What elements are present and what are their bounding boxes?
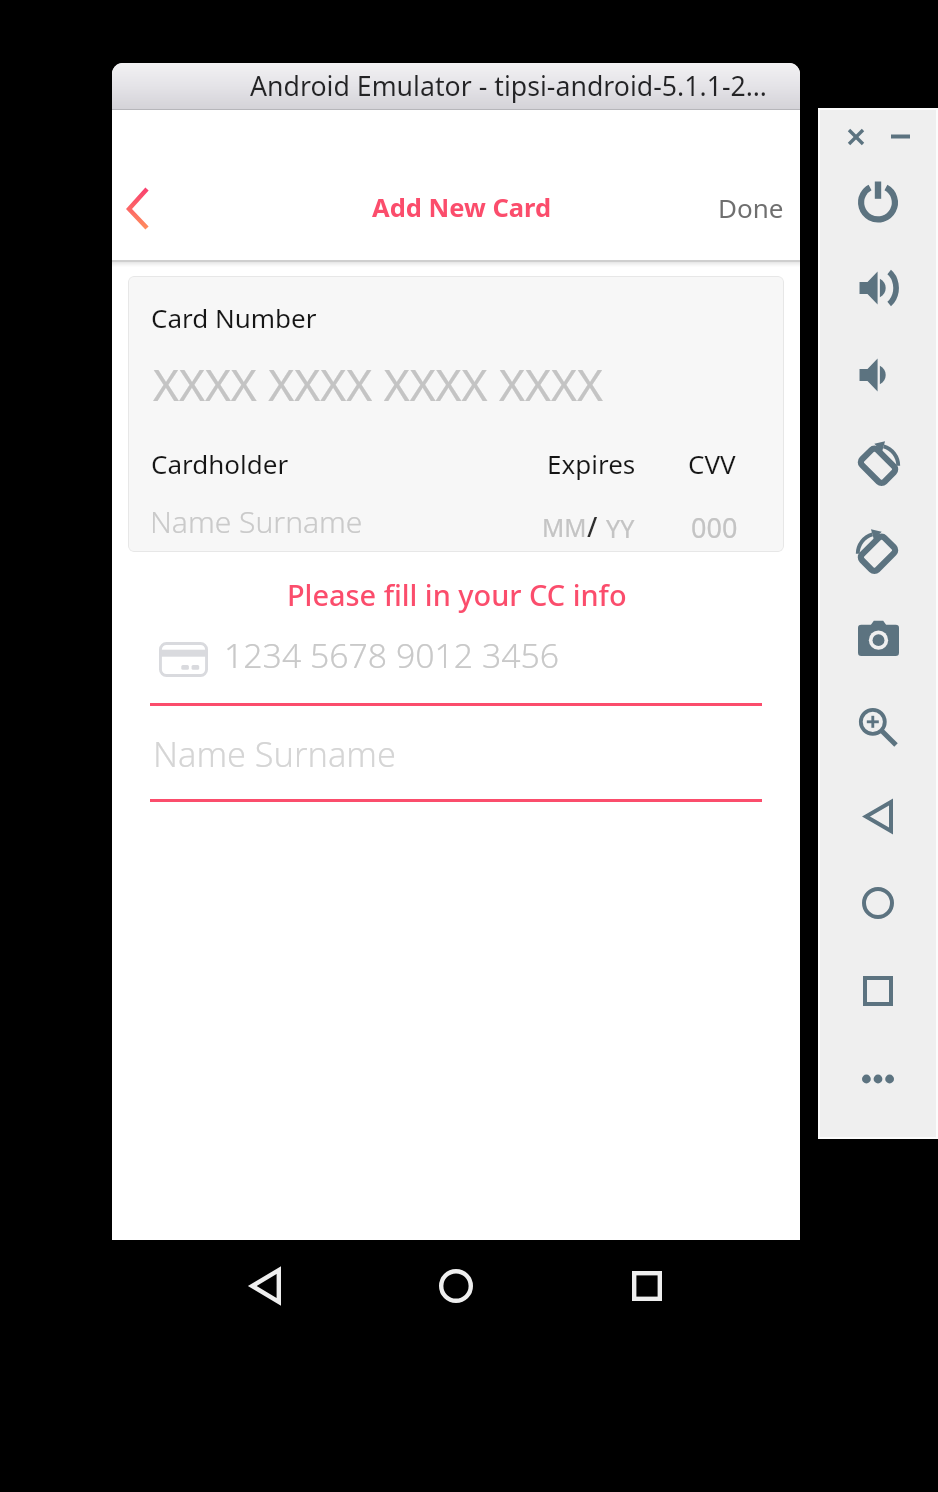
button[interactable]: Home [848, 873, 908, 933]
staticText: 000 [691, 509, 738, 546]
button[interactable]: Power [848, 170, 908, 230]
button[interactable]: Back [848, 786, 908, 846]
staticText: XXXX XXXX XXXX XXXX [153, 354, 603, 414]
staticText: Name Surname [153, 730, 396, 777]
button[interactable]: Rotate left [848, 433, 908, 493]
button[interactable]: Recent apps [617, 1256, 677, 1316]
button[interactable]: More [848, 1049, 908, 1109]
staticText: Add New Card [372, 190, 552, 225]
staticText: 1234 5678 9012 3456 [224, 632, 560, 678]
staticText: MM [542, 511, 587, 544]
button[interactable]: Back [235, 1256, 295, 1316]
button[interactable]: Zoom [848, 697, 908, 757]
staticText: Card Number [151, 300, 317, 335]
button[interactable]: Done [708, 181, 800, 225]
staticText: CVV [688, 446, 736, 481]
staticText: Expires [547, 446, 636, 481]
button[interactable]: Minimize [880, 116, 921, 157]
staticText: Name Surname [150, 501, 363, 542]
button[interactable]: Overview [848, 961, 908, 1021]
staticText: Cardholder [151, 446, 289, 481]
button[interactable]: Home [426, 1256, 486, 1316]
button[interactable]: Volume up [848, 258, 908, 318]
button[interactable]: Add New Card [362, 181, 552, 225]
staticText: / [587, 508, 598, 545]
staticText: Please fill in your CC info [287, 575, 627, 614]
button[interactable]: Close [835, 116, 876, 157]
staticText: Done [718, 190, 784, 225]
staticText: YY [606, 511, 635, 545]
button[interactable]: Rotate right [848, 521, 908, 581]
button[interactable]: Volume down [848, 345, 908, 405]
button[interactable]: Back [112, 153, 188, 229]
button[interactable]: Take screenshot [848, 608, 908, 668]
staticText: Android Emulator - tipsi-android-5.1.1-2… [250, 67, 767, 103]
